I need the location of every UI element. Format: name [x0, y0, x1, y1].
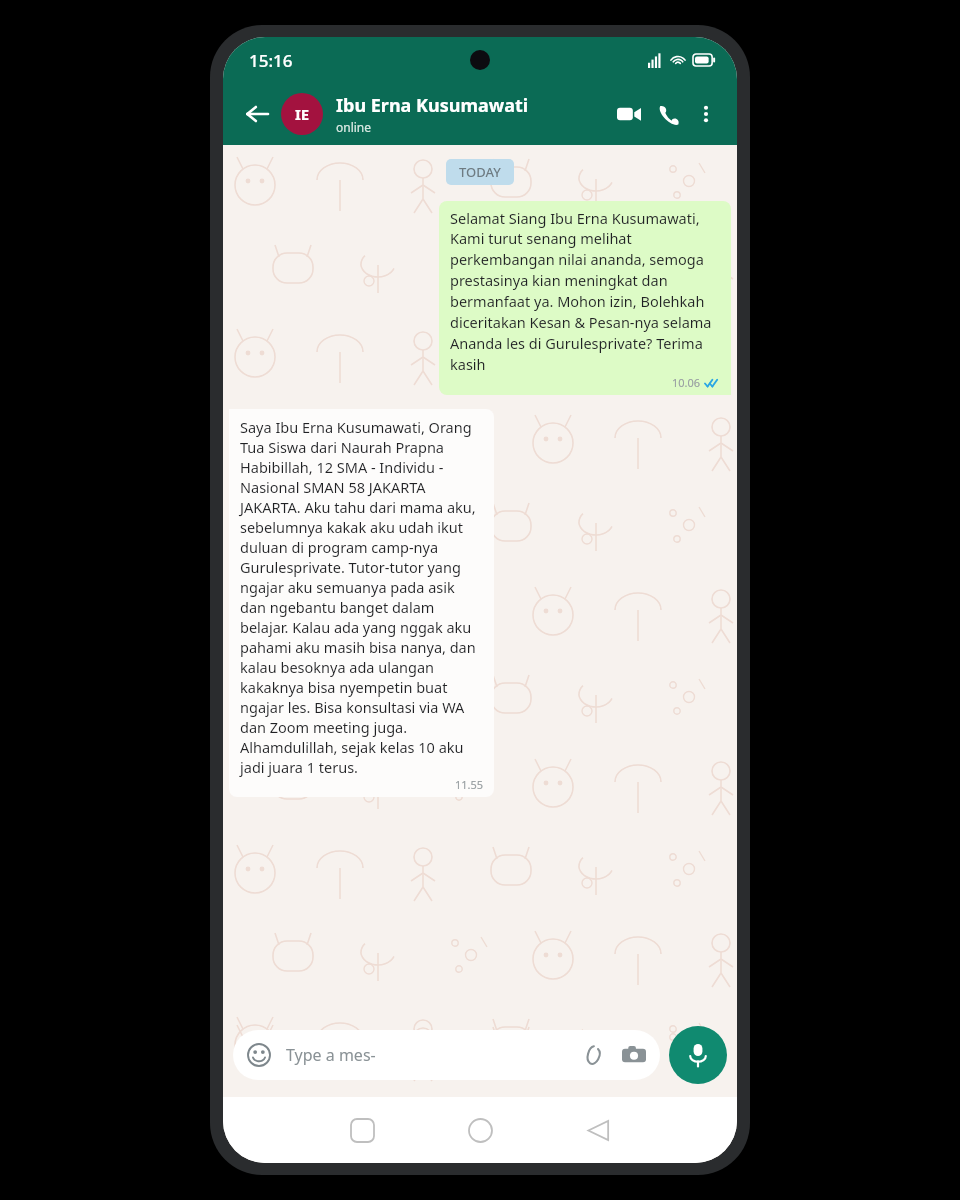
staticText: TODAY	[459, 163, 501, 181]
button[interactable]: Ibu Erna Kusumawati	[336, 93, 609, 135]
button[interactable]: More options	[689, 97, 723, 131]
staticText: IE	[295, 104, 310, 124]
other: Emoji	[246, 1042, 272, 1068]
button[interactable]: Back	[568, 1100, 628, 1160]
button[interactable]: Emoji	[233, 1030, 660, 1080]
staticText: Saya Ibu Erna Kusumawati, Orang Tua Sisw…	[240, 417, 484, 777]
button[interactable]: Voice message	[669, 1026, 727, 1084]
staticText: Selamat Siang Ibu Erna Kusumawati, Kami …	[450, 208, 721, 375]
button[interactable]: Voice call	[649, 94, 689, 134]
staticText: online	[336, 119, 372, 135]
button[interactable]: IE	[281, 93, 323, 135]
staticText: 15:16	[249, 49, 293, 72]
button[interactable]: Back	[237, 94, 277, 134]
other: Attach	[579, 1042, 605, 1068]
button[interactable]: Video call	[609, 94, 649, 134]
staticText: Ibu Erna Kusumawati	[336, 93, 529, 118]
button[interactable]: Home	[450, 1100, 510, 1160]
other: Camera	[621, 1042, 647, 1068]
button[interactable]: Selamat Siang Ibu Erna Kusumawati, Kami …	[439, 201, 731, 395]
staticText: 11.55	[455, 777, 484, 792]
staticText: 10.06	[672, 375, 701, 390]
button[interactable]: Recents	[332, 1100, 392, 1160]
staticText: Type a mes-	[286, 1044, 579, 1066]
button[interactable]: Saya Ibu Erna Kusumawati, Orang Tua Sisw…	[229, 409, 494, 797]
